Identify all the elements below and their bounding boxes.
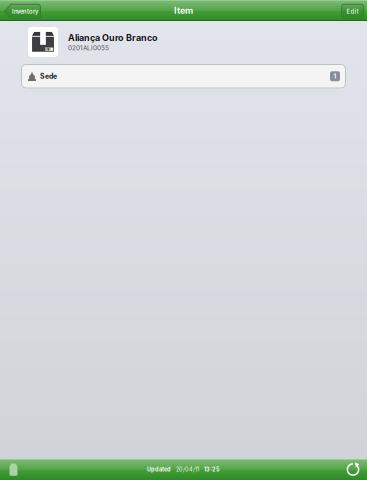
button[interactable]: Labels: [1, 459, 26, 480]
staticText: Aliança Ouro Branco: [68, 32, 158, 43]
button[interactable]: Refresh: [340, 459, 366, 480]
staticText: 1: [333, 72, 336, 80]
staticText: Item: [174, 5, 193, 16]
staticText: Inventory: [12, 8, 38, 15]
button[interactable]: Sede: [21, 64, 346, 88]
staticText: Sede: [40, 72, 57, 80]
staticText: Updated: [147, 466, 171, 473]
button[interactable]: Inventory: [4, 3, 41, 18]
button[interactable]: Edit: [341, 3, 364, 18]
staticText: 13:25: [204, 466, 220, 473]
staticText: 0201ALI0055: [68, 44, 109, 52]
staticText: Edit: [346, 8, 358, 15]
staticText: 20/04/11: [176, 466, 199, 473]
